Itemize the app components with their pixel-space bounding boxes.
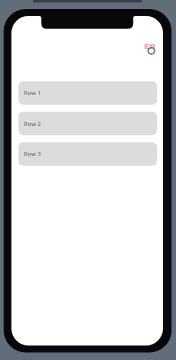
staticText: Row 3: [24, 150, 41, 158]
staticText: Row 1: [24, 89, 41, 97]
staticText: Row 2: [24, 120, 41, 128]
button[interactable]: Row 2: [18, 112, 157, 135]
button[interactable]: Row 3: [18, 142, 157, 165]
button[interactable]: Row 1: [18, 81, 157, 104]
button[interactable]: Settings: [143, 42, 157, 56]
